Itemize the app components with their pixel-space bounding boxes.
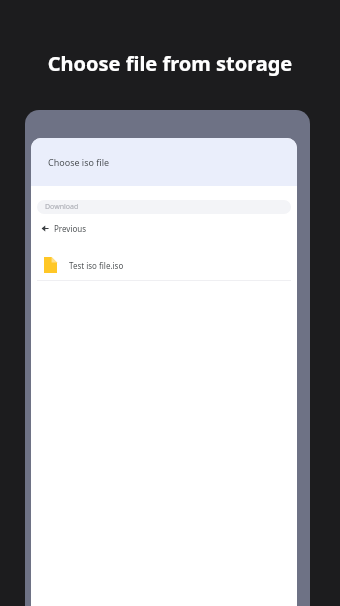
other: Previous folder <box>40 224 49 233</box>
button[interactable]: Download <box>37 200 291 214</box>
staticText: Test iso file.iso <box>69 260 124 271</box>
staticText: Download <box>45 202 79 212</box>
button[interactable]: Test iso file.iso <box>31 250 297 280</box>
button[interactable]: Previous folder <box>31 218 297 238</box>
button[interactable]: Choose iso file <box>31 138 297 186</box>
staticText: Choose file from storage <box>0 50 340 77</box>
staticText: Choose iso file <box>48 156 110 168</box>
staticText: Previous <box>54 223 87 234</box>
